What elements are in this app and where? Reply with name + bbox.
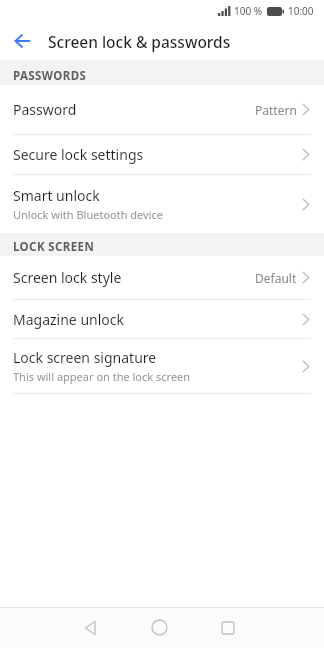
- button[interactable]: Secure lock settings: [0, 135, 324, 174]
- staticText: Password: [13, 100, 77, 119]
- staticText: Magazine unlock: [13, 310, 124, 329]
- button[interactable]: [0, 22, 44, 60]
- staticText: Unlock with Bluetooth device: [13, 207, 164, 222]
- button[interactable]: Magazine unlock: [0, 300, 324, 338]
- button[interactable]: Screen lock style: [0, 256, 324, 299]
- staticText: Smart unlock: [13, 186, 100, 205]
- staticText: Secure lock settings: [13, 145, 144, 164]
- staticText: Screen lock & passwords: [48, 31, 231, 52]
- staticText: LOCK SCREEN: [13, 239, 95, 255]
- staticText: PASSWORDS: [13, 68, 87, 84]
- button[interactable]: Lock screen signature: [0, 339, 324, 393]
- staticText: Pattern: [255, 102, 297, 118]
- staticText: 100 %: [234, 4, 263, 18]
- staticText: Lock screen signature: [13, 348, 157, 367]
- staticText: This will appear on the lock screen: [13, 369, 191, 384]
- button[interactable]: [83, 620, 98, 636]
- staticText: Screen lock style: [13, 268, 122, 287]
- button[interactable]: [151, 619, 168, 636]
- button[interactable]: [221, 621, 235, 635]
- staticText: 10:00: [288, 4, 314, 18]
- staticText: Default: [255, 270, 297, 286]
- button[interactable]: Smart unlock: [0, 175, 324, 233]
- button[interactable]: Password: [0, 85, 324, 134]
